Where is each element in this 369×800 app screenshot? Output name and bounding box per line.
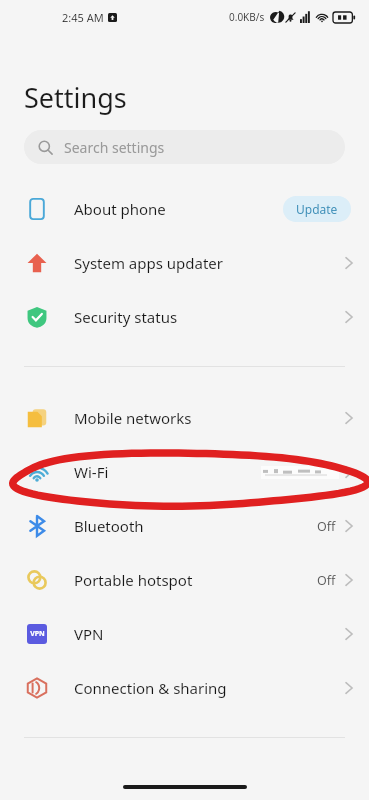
staticText: Off [317, 518, 336, 535]
staticText: Search settings [64, 138, 165, 157]
button[interactable]: Bluetooth [0, 499, 369, 553]
staticText: Wi-Fi [74, 462, 109, 482]
staticText: VPN [30, 629, 45, 639]
button[interactable]: Update [283, 196, 351, 222]
staticText: Security status [74, 307, 178, 327]
other: About phone [26, 198, 48, 220]
button[interactable]: System apps updater [0, 236, 369, 290]
staticText: 2:45 AM [62, 10, 104, 25]
button[interactable]: About phone [0, 182, 369, 236]
button[interactable]: Portable hotspot [0, 553, 369, 607]
button[interactable]: Wi-Fi [0, 445, 369, 499]
other: System apps updater [26, 252, 48, 274]
staticText: Connection & sharing [74, 678, 227, 698]
staticText: About phone [74, 199, 166, 219]
other: Security status [26, 306, 48, 328]
other: Portable hotspot [26, 569, 48, 591]
staticText: 0.0KB/s [229, 10, 265, 24]
staticText: Off [317, 572, 336, 589]
button[interactable]: Connection & sharing [0, 661, 369, 715]
other: Connection & sharing [26, 677, 48, 699]
other: Bluetooth [26, 515, 48, 537]
staticText: Settings [24, 79, 127, 116]
other: Wi-Fi [25, 460, 49, 484]
other: Mobile networks [26, 407, 48, 429]
button[interactable]: Mobile networks [0, 391, 369, 445]
staticText: Portable hotspot [74, 570, 193, 590]
staticText: Update [296, 201, 338, 217]
button[interactable]: Security status [0, 290, 369, 344]
staticText: VPN [74, 624, 104, 644]
button[interactable]: VPN [0, 607, 369, 661]
staticText: System apps updater [74, 253, 224, 273]
staticText: Bluetooth [74, 516, 144, 536]
staticText: Mobile networks [74, 408, 192, 428]
button[interactable]: Search settings [24, 130, 345, 164]
